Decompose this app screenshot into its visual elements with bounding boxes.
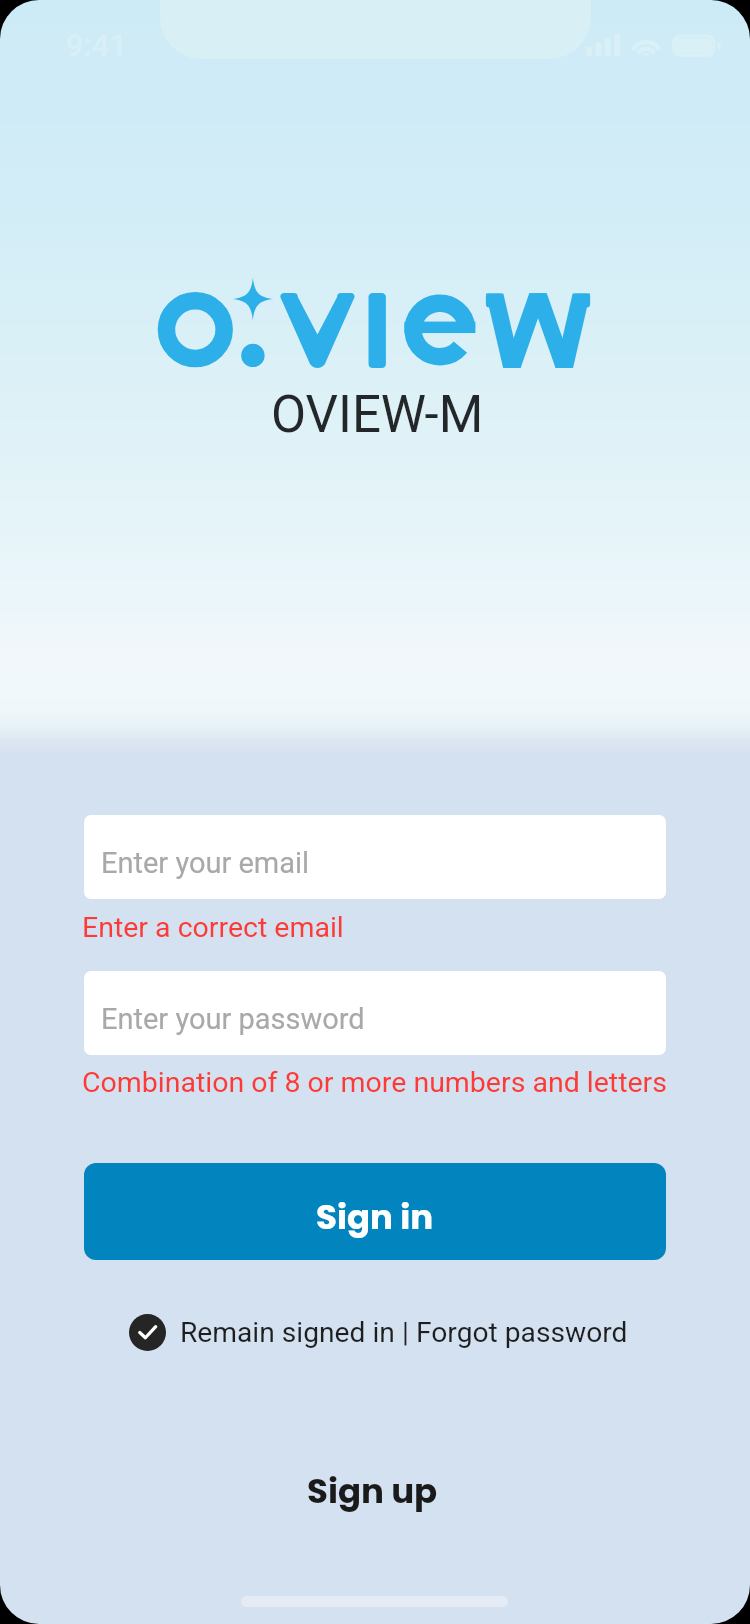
staticText: Enter a correct email — [82, 911, 344, 944]
staticText: Sign in — [316, 1193, 434, 1241]
staticText: OVIEW-M — [271, 385, 484, 445]
other: Wi-Fi — [629, 33, 663, 57]
button[interactable]: Remain signed in — [180, 1316, 395, 1349]
staticText: | — [395, 1316, 416, 1349]
staticText: Combination of 8 or more numbers and let… — [82, 1066, 667, 1099]
staticText: 9:41 — [66, 27, 128, 63]
button[interactable]: Sign up — [307, 1467, 438, 1515]
button[interactable]: Sign in — [84, 1163, 666, 1260]
other: Battery — [672, 34, 721, 58]
button[interactable]: Enter your password — [84, 971, 666, 1055]
button[interactable]: Forgot password — [416, 1316, 628, 1349]
button[interactable]: Remain signed in — [129, 1314, 166, 1351]
button[interactable]: Enter your email — [84, 815, 666, 899]
staticText: Enter your password — [101, 1002, 365, 1036]
staticText: Enter your email — [101, 846, 310, 880]
